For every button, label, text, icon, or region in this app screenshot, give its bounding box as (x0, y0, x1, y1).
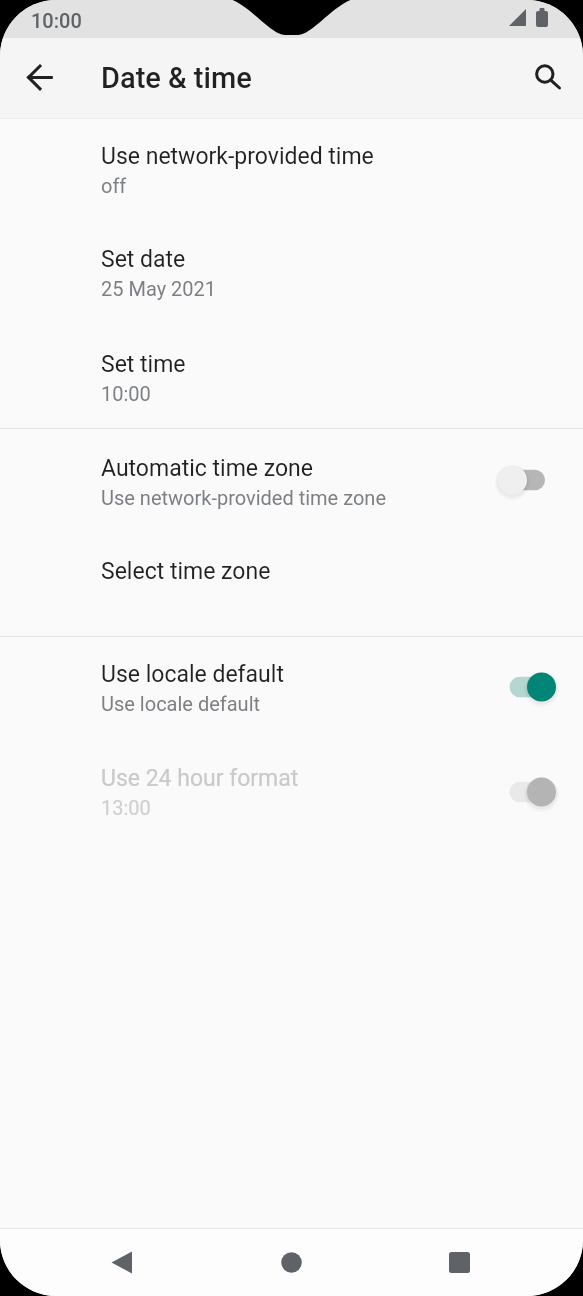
staticText: Use network-provided time zone (101, 486, 387, 509)
button[interactable]: Navigate up (15, 53, 65, 103)
button[interactable]: Select time zone (0, 532, 583, 636)
button[interactable]: Set date (0, 221, 583, 326)
staticText: 10:00 (31, 9, 82, 32)
staticText: 25 May 2021 (101, 277, 217, 300)
button[interactable]: Use locale default (484, 661, 570, 713)
button[interactable]: Use locale default (0, 637, 583, 741)
button[interactable]: Automatic time zone (0, 429, 583, 532)
staticText: Date & time (101, 61, 252, 95)
staticText: Set date (101, 246, 186, 273)
staticText: Use network-provided time (101, 143, 374, 170)
staticText: Use locale default (101, 692, 261, 715)
staticText: off (101, 174, 127, 197)
button[interactable]: Back (80, 1229, 164, 1296)
button[interactable]: Home (249, 1229, 333, 1296)
staticText: Use 24 hour format (101, 765, 299, 792)
staticText: Set time (101, 351, 186, 378)
button[interactable]: Search (520, 53, 570, 103)
staticText: Select time zone (101, 558, 271, 585)
button[interactable]: Use network-provided time (0, 119, 583, 221)
button[interactable]: Recent apps (418, 1229, 502, 1296)
button[interactable]: Set time (0, 326, 583, 428)
staticText: Use locale default (101, 661, 284, 688)
staticText: 10:00 (101, 382, 151, 405)
staticText: Automatic time zone (101, 455, 313, 482)
button[interactable]: Use 24 hour format (484, 766, 570, 818)
staticText: 13:00 (101, 796, 151, 819)
button[interactable]: Automatic time zone (484, 454, 570, 506)
button[interactable]: Use 24 hour format (0, 741, 583, 845)
